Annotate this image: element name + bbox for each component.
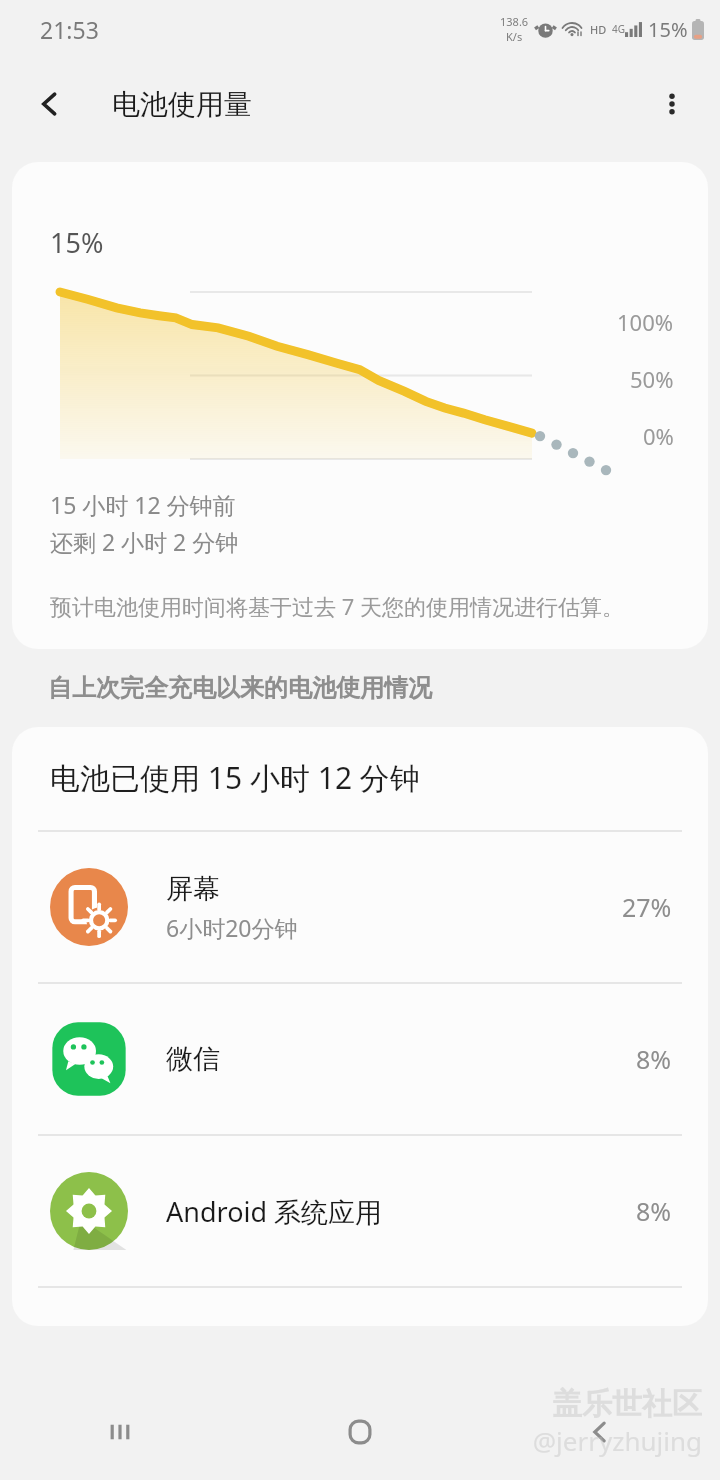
- staticText: 6小时20分钟: [166, 912, 298, 943]
- staticText: 电池使用量: [112, 87, 252, 122]
- button[interactable]: More options: [644, 76, 700, 132]
- staticText: 自上次完全充电以来的电池使用情况: [48, 673, 432, 703]
- staticText: 27%: [622, 890, 672, 924]
- staticText: 还剩 2 小时 2 分钟: [50, 526, 239, 557]
- staticText: 50%: [630, 364, 674, 394]
- button[interactable]: Recents: [0, 1384, 240, 1480]
- staticText: K/s: [506, 29, 523, 44]
- staticText: 138.6: [500, 14, 529, 29]
- staticText: HD: [590, 22, 607, 37]
- button[interactable]: Android 系统应用: [12, 1136, 708, 1286]
- staticText: 15%: [50, 224, 104, 261]
- staticText: 15 小时 12 分钟前: [50, 489, 236, 520]
- staticText: 预计电池使用时间将基于过去 7 天您的使用情况进行估算。: [50, 591, 625, 621]
- button[interactable]: Back: [22, 76, 78, 132]
- button[interactable]: Home: [240, 1384, 480, 1480]
- staticText: 8%: [636, 1194, 672, 1228]
- staticText: @jerryzhujing: [532, 1423, 702, 1458]
- staticText: 4G: [612, 22, 625, 36]
- staticText: 100%: [617, 307, 674, 337]
- button[interactable]: Back: [480, 1384, 720, 1480]
- staticText: 屏幕: [166, 872, 220, 906]
- staticText: 微信: [166, 1042, 220, 1076]
- staticText: Android 系统应用: [166, 1193, 383, 1230]
- staticText: 8%: [636, 1042, 672, 1076]
- staticText: 21:53: [40, 14, 99, 45]
- staticText: 15%: [648, 16, 688, 43]
- button[interactable]: 微信: [12, 984, 708, 1134]
- button[interactable]: 15%: [12, 162, 708, 649]
- staticText: 0%: [643, 421, 674, 451]
- staticText: 电池已使用 15 小时 12 分钟: [50, 757, 420, 798]
- button[interactable]: 屏幕: [12, 832, 708, 982]
- staticText: 盖乐世社区: [552, 1385, 702, 1423]
